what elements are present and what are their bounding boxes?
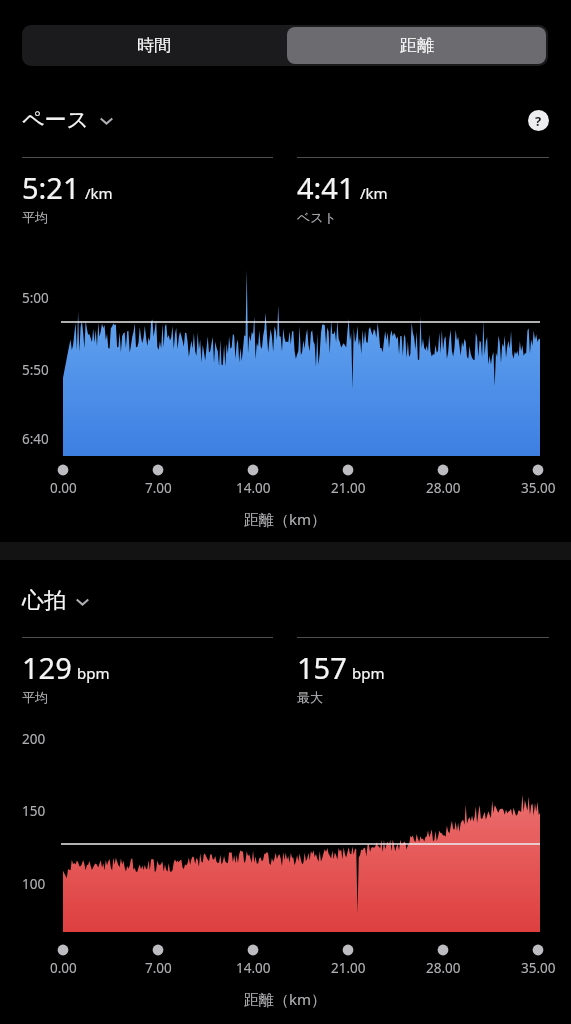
staticText: 平均 (22, 689, 48, 705)
staticText: ペース (22, 106, 90, 134)
staticText: 21.00 (331, 479, 366, 497)
staticText: 距離（km） (244, 989, 327, 1009)
staticText: 35.00 (521, 959, 556, 977)
button[interactable]: ヘルプ (526, 108, 551, 133)
staticText: 14.00 (236, 959, 271, 977)
staticText: 心拍 (22, 587, 66, 615)
staticText: 時間 (137, 35, 171, 56)
staticText: 7.00 (145, 959, 172, 977)
staticText: 5:50 (22, 361, 49, 379)
button[interactable]: 時間 (22, 25, 285, 66)
staticText: 157 (297, 648, 347, 687)
staticText: 7.00 (145, 479, 172, 497)
staticText: ベスト (297, 209, 337, 225)
staticText: 100 (22, 875, 46, 893)
button[interactable]: 距離 (287, 27, 546, 64)
staticText: /km (360, 183, 388, 203)
staticText: /km (85, 183, 113, 203)
staticText: 5:00 (22, 289, 49, 307)
staticText: bpm (77, 663, 110, 683)
staticText: 最大 (297, 689, 323, 705)
staticText: 5:21 (22, 168, 80, 207)
staticText: ? (535, 112, 542, 130)
staticText: 平均 (22, 209, 48, 225)
staticText: 129 (22, 648, 72, 687)
button[interactable]: ペース (22, 106, 115, 134)
staticText: 21.00 (331, 959, 366, 977)
staticText: 28.00 (426, 959, 461, 977)
staticText: 距離 (400, 35, 434, 56)
staticText: 0.00 (50, 479, 77, 497)
staticText: 距離（km） (244, 509, 327, 529)
staticText: 4:41 (297, 168, 355, 207)
button[interactable]: 心拍 (22, 587, 91, 615)
staticText: 150 (22, 802, 46, 820)
staticText: 0.00 (50, 959, 77, 977)
staticText: 14.00 (236, 479, 271, 497)
staticText: 28.00 (426, 479, 461, 497)
staticText: bpm (352, 663, 385, 683)
staticText: 200 (22, 730, 46, 748)
staticText: 6:40 (22, 430, 49, 448)
staticText: 35.00 (521, 479, 556, 497)
